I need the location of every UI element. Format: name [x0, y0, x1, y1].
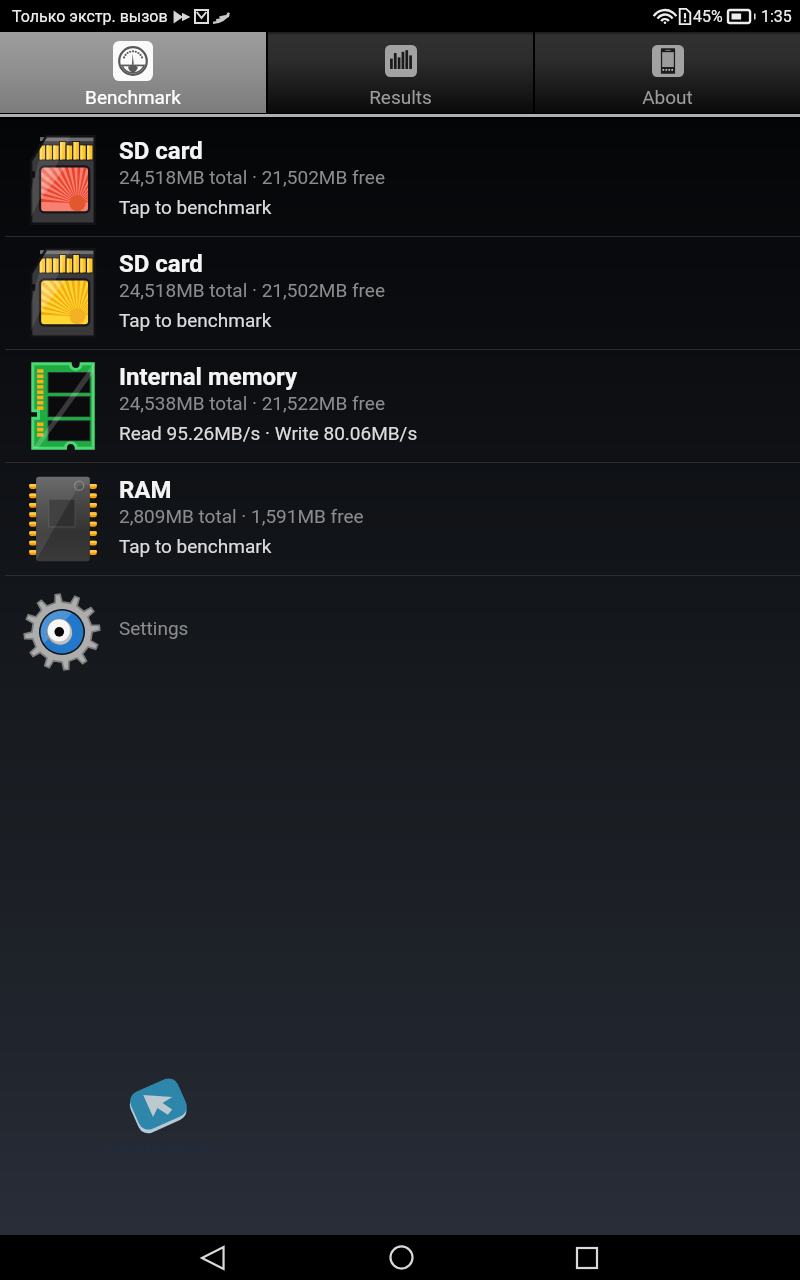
button[interactable]: Internal memory: [0, 350, 800, 462]
staticText: Settings: [119, 617, 189, 639]
staticText: Results: [369, 86, 432, 108]
staticText: Tap to benchmark: [119, 196, 272, 218]
button[interactable]: Home: [356, 1235, 446, 1280]
staticText: 1:35: [761, 7, 792, 26]
staticText: Benchmark: [85, 86, 181, 108]
staticText: 2,809MB total · 1,591MB free: [119, 505, 364, 527]
button[interactable]: SD card: [0, 237, 800, 349]
button[interactable]: Benchmark: [0, 32, 266, 113]
staticText: Read 95.26MB/s · Write 80.06MB/s: [119, 422, 418, 444]
staticText: Tap to benchmark: [119, 535, 272, 557]
staticText: Tap to benchmark: [119, 309, 272, 331]
staticText: 45%: [693, 7, 723, 26]
staticText: 24,538MB total · 21,522MB free: [119, 392, 385, 414]
staticText: Internal memory: [119, 363, 298, 391]
button[interactable]: Results: [268, 32, 533, 113]
button[interactable]: Settings: [0, 576, 800, 688]
staticText: SD card: [119, 250, 203, 278]
staticText: 24,518MB total · 21,502MB free: [119, 279, 385, 301]
staticText: mobile-review.com: [104, 1140, 213, 1155]
staticText: RAM: [119, 476, 172, 504]
staticText: About: [642, 86, 693, 108]
button[interactable]: Recents: [542, 1235, 632, 1280]
staticText: 24,518MB total · 21,502MB free: [119, 166, 385, 188]
button[interactable]: Back: [168, 1235, 258, 1280]
button[interactable]: SD card: [0, 124, 800, 236]
button[interactable]: RAM: [0, 463, 800, 575]
button[interactable]: About: [535, 32, 800, 113]
staticText: SD card: [119, 137, 203, 165]
staticText: Только экстр. вызов: [12, 7, 168, 26]
